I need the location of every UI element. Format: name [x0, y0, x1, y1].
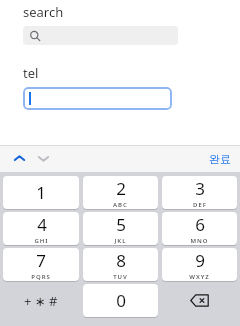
button[interactable]: 8 — [83, 248, 158, 281]
staticText: 4 — [37, 213, 47, 236]
button[interactable]: 1 — [3, 176, 79, 209]
staticText: 0 — [116, 289, 126, 312]
staticText: + ∗ # — [24, 292, 58, 310]
button[interactable] — [23, 87, 172, 110]
button[interactable]: Delete — [162, 284, 237, 317]
staticText: 8 — [116, 249, 126, 272]
staticText: WXYZ — [189, 273, 210, 281]
staticText: 5 — [116, 213, 126, 236]
staticText: 6 — [195, 213, 205, 236]
button[interactable]: Next field — [33, 148, 54, 169]
staticText: 7 — [36, 249, 46, 272]
button[interactable]: + ∗ # — [3, 284, 79, 317]
staticText: GHI — [34, 237, 49, 245]
staticText: tel — [23, 64, 39, 82]
staticText: ABC — [113, 201, 128, 209]
button[interactable]: Search — [23, 26, 178, 45]
button[interactable]: 4 — [3, 212, 79, 245]
button[interactable]: 2 — [83, 176, 158, 209]
button[interactable]: 7 — [3, 248, 79, 281]
button[interactable]: 6 — [162, 212, 237, 245]
staticText: JKL — [114, 237, 127, 245]
button[interactable]: 5 — [83, 212, 158, 245]
staticText: 2 — [116, 177, 126, 200]
staticText: search — [23, 3, 64, 21]
staticText: PQRS — [31, 273, 51, 281]
button[interactable]: 0 — [83, 284, 158, 317]
button[interactable]: 3 — [162, 176, 237, 209]
staticText: DEF — [193, 201, 207, 209]
staticText: 3 — [195, 177, 205, 200]
staticText: TUV — [113, 273, 128, 281]
other: Search — [29, 30, 41, 42]
staticText: 1 — [36, 181, 46, 204]
staticText: MNO — [190, 237, 209, 245]
staticText: 완료 — [209, 152, 231, 166]
staticText: 9 — [195, 249, 205, 272]
button[interactable]: 완료 — [206, 149, 234, 169]
button[interactable]: 9 — [162, 248, 237, 281]
button[interactable]: Previous field — [9, 148, 30, 169]
